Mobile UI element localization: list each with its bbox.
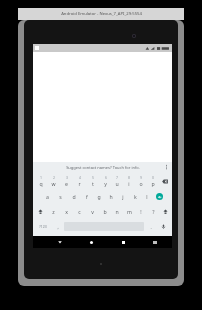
button[interactable]: 0	[147, 174, 159, 189]
staticText: e	[65, 180, 68, 187]
button[interactable]: 6	[99, 174, 111, 189]
button[interactable]: Home	[83, 236, 99, 248]
staticText: w	[51, 180, 56, 187]
button[interactable]: l	[141, 189, 153, 204]
button[interactable]: Shift	[34, 204, 47, 219]
button[interactable]: Enter	[153, 189, 165, 204]
staticText: u	[115, 180, 119, 187]
staticText: y	[104, 180, 107, 187]
button[interactable]: 9	[135, 174, 147, 189]
staticText: b	[103, 208, 107, 215]
button[interactable]: Backspace	[159, 174, 171, 189]
button[interactable]: f	[80, 189, 93, 204]
staticText: s	[59, 193, 62, 200]
button[interactable]: z	[47, 204, 60, 219]
staticText: k	[134, 193, 137, 200]
staticText: z	[52, 208, 55, 215]
staticText: f	[86, 193, 88, 200]
staticText: r	[78, 180, 81, 187]
button[interactable]: 4	[73, 174, 86, 189]
staticText: ,	[57, 224, 59, 230]
button[interactable]: b	[99, 204, 111, 219]
button[interactable]: Back	[52, 236, 67, 248]
button[interactable]: g	[93, 189, 105, 204]
staticText: j	[122, 193, 124, 200]
staticText: 5	[92, 176, 94, 180]
button[interactable]: c	[73, 204, 86, 219]
button[interactable]: 1	[34, 174, 47, 189]
staticText: d	[72, 193, 76, 200]
staticText: 6	[105, 176, 107, 180]
staticText: Android Emulator - Nexus_7_API_29:5554	[61, 11, 142, 17]
staticText: ?	[152, 208, 155, 215]
staticText: 9	[140, 176, 142, 180]
staticText: 0	[152, 176, 154, 180]
staticText: v	[91, 208, 94, 215]
button[interactable]: v	[86, 204, 99, 219]
button[interactable]: Keyboard layout	[147, 236, 163, 248]
staticText: q	[39, 180, 43, 187]
staticText: a	[46, 193, 49, 200]
staticText: .	[150, 224, 152, 230]
button[interactable]: 7	[111, 174, 123, 189]
button[interactable]: ?	[147, 204, 159, 219]
button[interactable]: a	[41, 189, 54, 204]
staticText: n	[115, 208, 119, 215]
button[interactable]: Suggest contact names? Touch for info.	[33, 162, 172, 172]
staticText: 1	[40, 176, 42, 180]
button[interactable]: ?123	[34, 219, 52, 234]
staticText: x	[65, 208, 68, 215]
staticText: 2	[53, 176, 55, 180]
staticText: l	[146, 193, 148, 200]
button[interactable]: m	[123, 204, 135, 219]
staticText: o	[139, 180, 143, 187]
button[interactable]: More options	[165, 164, 168, 170]
staticText: Suggest contact names? Touch for info.	[66, 165, 140, 170]
button[interactable]: 2	[47, 174, 60, 189]
button[interactable]: 8	[123, 174, 135, 189]
button[interactable]: d	[67, 189, 80, 204]
staticText: m	[127, 208, 132, 215]
button[interactable]: ,	[52, 219, 63, 234]
staticText: ?123	[39, 224, 47, 229]
staticText: c	[78, 208, 81, 215]
button[interactable]: j	[117, 189, 129, 204]
button[interactable]: x	[60, 204, 73, 219]
staticText: t	[92, 180, 94, 187]
button[interactable]: 3	[60, 174, 73, 189]
staticText: 8	[128, 176, 130, 180]
staticText: h	[109, 193, 113, 200]
button[interactable]: h	[105, 189, 117, 204]
button[interactable]: Voice input	[156, 219, 171, 234]
button[interactable]: 5	[86, 174, 99, 189]
staticText: !	[140, 208, 142, 215]
button[interactable]: s	[54, 189, 67, 204]
button[interactable]: n	[111, 204, 123, 219]
staticText: i	[128, 180, 130, 187]
button[interactable]: Shift	[159, 204, 171, 219]
button[interactable]: k	[129, 189, 141, 204]
staticText: 3	[66, 176, 68, 180]
button[interactable]: Recent apps	[115, 236, 131, 248]
staticText: 7	[116, 176, 118, 180]
staticText: 4	[79, 176, 81, 180]
staticText: p	[151, 180, 155, 187]
staticText: g	[97, 193, 101, 200]
button[interactable]: !	[135, 204, 147, 219]
